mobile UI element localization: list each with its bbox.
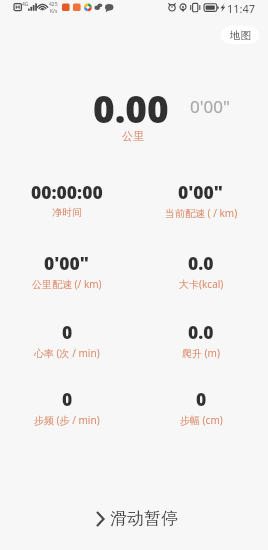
staticText: 4G bbox=[22, 1, 29, 8]
staticText: 公里 bbox=[122, 129, 144, 143]
staticText: 爬升 (m) bbox=[182, 346, 220, 360]
button[interactable]: 地图 bbox=[221, 26, 259, 44]
staticText: 公里配速 (/ km) bbox=[32, 277, 102, 291]
staticText: 大卡(kcal) bbox=[179, 277, 224, 291]
staticText: 当前配速 ( / km) bbox=[165, 206, 238, 220]
staticText: 地图 bbox=[230, 29, 251, 42]
staticText: 步幅 (cm) bbox=[180, 413, 223, 427]
staticText: 0'00" bbox=[44, 251, 90, 275]
staticText: 步频 (步 / min) bbox=[34, 413, 100, 427]
staticText: K/s bbox=[50, 8, 58, 15]
staticText: 0 bbox=[62, 320, 73, 344]
staticText: 0'00" bbox=[190, 95, 230, 118]
staticText: 11:47 bbox=[227, 1, 256, 16]
staticText: 0.0 bbox=[188, 251, 214, 275]
staticText: 0 bbox=[62, 387, 73, 411]
staticText: 425 bbox=[49, 1, 58, 8]
staticText: 滑动暂停 bbox=[110, 508, 178, 529]
staticText: 心率 (次 / min) bbox=[34, 346, 100, 360]
staticText: 00:00:00 bbox=[31, 180, 103, 204]
staticText: 0 bbox=[196, 387, 207, 411]
staticText: 0'00" bbox=[178, 180, 224, 204]
staticText: 净时间 bbox=[52, 206, 82, 219]
button[interactable]: 滑动暂停 bbox=[0, 498, 268, 538]
staticText: 0.0 bbox=[188, 320, 214, 344]
staticText: 0.00 bbox=[93, 83, 169, 133]
